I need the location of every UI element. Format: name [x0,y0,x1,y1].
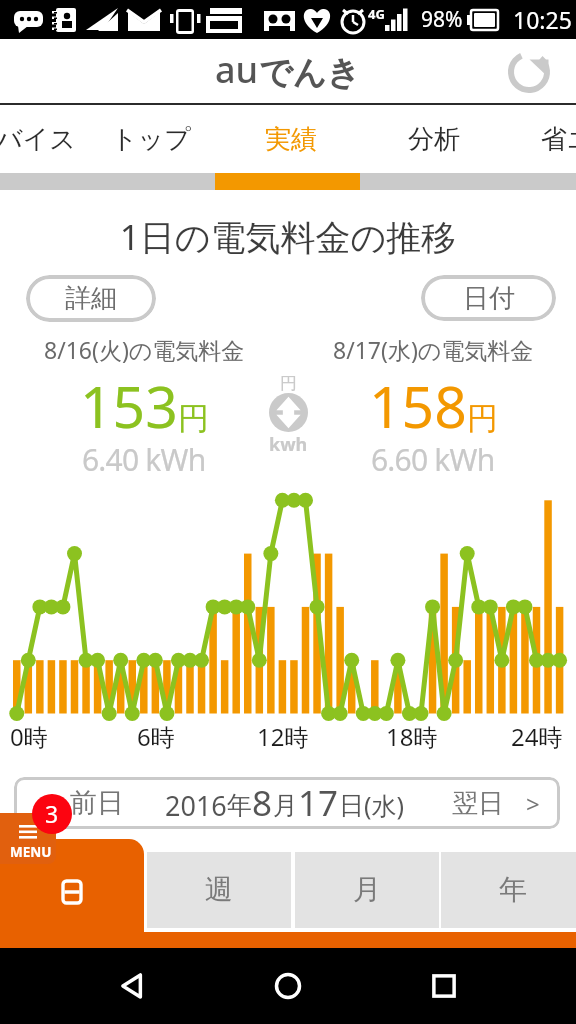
staticText: 3 [45,798,59,829]
staticText: 6時 [137,720,175,753]
staticText: 2016 [165,787,227,824]
staticText: 円 [280,373,297,394]
staticText: 158 [369,367,467,445]
staticText: 8/17(水)の電気料金 [333,334,534,365]
staticText: > [526,787,540,820]
button[interactable]: Toggle yen and kwh [269,393,308,432]
staticText: 12時 [257,720,309,753]
staticText: (水) [364,788,405,822]
staticText: kwh [269,432,308,457]
button[interactable]: 日付 [421,275,556,321]
button[interactable]: 週 [147,852,291,928]
staticText: 24時 [511,720,563,753]
staticText: 年 [499,872,527,907]
button[interactable]: 翌日 [452,777,560,829]
staticText: 日付 [463,282,515,315]
staticText: 年 [227,790,252,821]
button[interactable]: バイス [0,105,105,173]
button[interactable]: 実績 [232,105,350,173]
staticText: 8 [252,779,273,827]
staticText: 6.60 kWh [371,439,495,480]
staticText: 翌日 [452,787,504,820]
staticText: 18時 [386,720,438,753]
staticText: 6.40 kWh [82,439,206,480]
staticText: 分析 [408,123,460,156]
staticText: 17 [298,779,339,827]
button[interactable]: 分析 [375,105,493,173]
staticText: 省エ [541,123,576,156]
staticText: バイス [0,123,76,156]
button[interactable]: Menu [0,813,56,864]
staticText: 1日の電気料金の推移 [0,213,576,261]
button[interactable]: 月 [295,852,439,928]
button[interactable]: 前日 [52,777,142,829]
button[interactable]: 年 [441,852,576,928]
button[interactable]: Refresh [502,45,556,99]
staticText: au [215,45,259,94]
staticText: 153 [80,367,178,445]
button[interactable] [0,839,144,948]
staticText: トップ [111,123,191,156]
staticText: でんき [259,52,361,94]
staticText: 週 [205,872,233,907]
button[interactable]: 詳細 [26,275,156,322]
staticText: 円 [467,399,498,438]
staticText: 前日 [70,786,124,820]
button[interactable]: Recent apps [421,963,467,1009]
staticText: 詳細 [65,282,117,315]
staticText: 円 [178,399,209,438]
staticText: 月 [273,790,298,821]
staticText: 10:25 [513,4,572,35]
staticText: 実績 [265,123,317,156]
button[interactable]: トップ [82,105,220,173]
button[interactable]: Home [265,963,311,1009]
staticText: 月 [353,872,381,907]
staticText: MENU [10,843,52,861]
staticText: 4G [368,5,385,23]
button[interactable]: Back [110,963,156,1009]
staticText: 98% [421,5,463,34]
button[interactable]: 省エ [508,105,576,173]
staticText: 0時 [10,720,48,753]
staticText: 日 [339,790,364,821]
staticText: 8/16(火)の電気料金 [44,334,245,365]
